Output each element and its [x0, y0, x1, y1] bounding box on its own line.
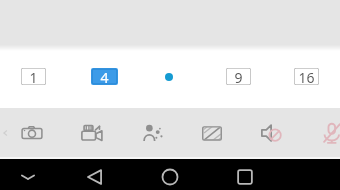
- button[interactable]: Recent apps: [231, 163, 259, 190]
- staticText: 16: [298, 68, 315, 85]
- button[interactable]: Home: [156, 163, 184, 190]
- button[interactable]: Mute speaker: [258, 119, 286, 147]
- staticText: 1: [29, 68, 38, 85]
- button[interactable]: 4: [91, 68, 118, 85]
- staticText: 4: [100, 68, 109, 85]
- staticText: 9: [234, 68, 243, 85]
- button[interactable]: Back: [81, 163, 109, 190]
- button[interactable]: 1: [21, 68, 46, 85]
- button[interactable]: Speaker view: [160, 68, 178, 85]
- button[interactable]: Blur background: [198, 119, 226, 147]
- button[interactable]: Turn off camera: [78, 119, 106, 147]
- button[interactable]: 16: [294, 68, 319, 85]
- button[interactable]: Switch camera: [18, 119, 46, 147]
- button[interactable]: 9: [226, 68, 251, 85]
- button[interactable]: Hide keyboard: [14, 163, 42, 190]
- button[interactable]: Mute microphone: [318, 119, 340, 147]
- button[interactable]: Effects: [138, 119, 166, 147]
- button[interactable]: Scroll left: [0, 127, 12, 139]
